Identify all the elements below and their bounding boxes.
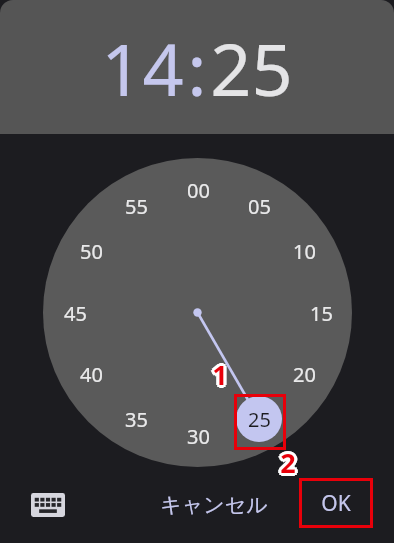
staticText: 50: [80, 238, 103, 265]
staticText: 2: [277, 444, 293, 480]
staticText: 2: [282, 442, 298, 478]
staticText: :: [187, 19, 207, 117]
staticText: 1: [214, 354, 230, 390]
staticText: 1: [214, 358, 230, 394]
staticText: 1: [210, 356, 226, 392]
staticText: 2: [282, 444, 298, 480]
button[interactable]: 14: [101, 19, 184, 117]
staticText: 1: [215, 356, 231, 392]
staticText: 45: [64, 300, 87, 327]
staticText: OK: [321, 489, 351, 518]
staticText: 15: [310, 300, 333, 327]
staticText: 2: [278, 444, 294, 480]
staticText: 1: [212, 353, 228, 389]
button[interactable]: 00: [175, 175, 221, 205]
staticText: 1: [212, 358, 228, 394]
button[interactable]: Switch to text input: [22, 485, 74, 525]
button[interactable]: 35: [113, 404, 159, 434]
staticText: 1: [210, 354, 226, 390]
button[interactable]: 45: [52, 298, 98, 328]
button[interactable]: 10: [281, 236, 327, 266]
staticText: 00: [187, 177, 210, 204]
staticText: 20: [293, 361, 316, 388]
staticText: 2: [280, 444, 296, 480]
button[interactable]: OK: [300, 479, 372, 527]
staticText: 1: [212, 354, 228, 390]
staticText: 1: [212, 359, 228, 395]
button[interactable]: キャンセル: [152, 483, 276, 527]
staticText: 30: [187, 423, 210, 450]
staticText: 10: [293, 238, 316, 265]
staticText: 2: [280, 446, 296, 482]
staticText: 2: [280, 442, 296, 478]
staticText: 2: [280, 447, 296, 483]
staticText: キャンセル: [160, 492, 268, 518]
staticText: 25: [248, 406, 271, 433]
button[interactable]: 25: [236, 404, 282, 434]
staticText: 55: [125, 193, 148, 220]
button[interactable]: 20: [281, 359, 327, 389]
staticText: 1: [214, 356, 230, 392]
button[interactable]: 55: [113, 191, 159, 221]
button[interactable]: 40: [68, 359, 114, 389]
staticText: 2: [282, 446, 298, 482]
button[interactable]: 50: [68, 236, 114, 266]
button[interactable]: 30: [175, 421, 221, 451]
staticText: 1: [212, 356, 228, 392]
staticText: 1: [209, 356, 225, 392]
button[interactable]: 25: [210, 19, 293, 117]
staticText: 05: [248, 193, 271, 220]
staticText: 2: [280, 441, 296, 477]
staticText: 1: [210, 358, 226, 394]
button[interactable]: 15: [298, 298, 344, 328]
staticText: 2: [278, 446, 294, 482]
staticText: 2: [278, 442, 294, 478]
button[interactable]: 05: [236, 191, 282, 221]
staticText: 35: [125, 406, 148, 433]
staticText: 40: [80, 361, 103, 388]
staticText: 2: [283, 444, 299, 480]
